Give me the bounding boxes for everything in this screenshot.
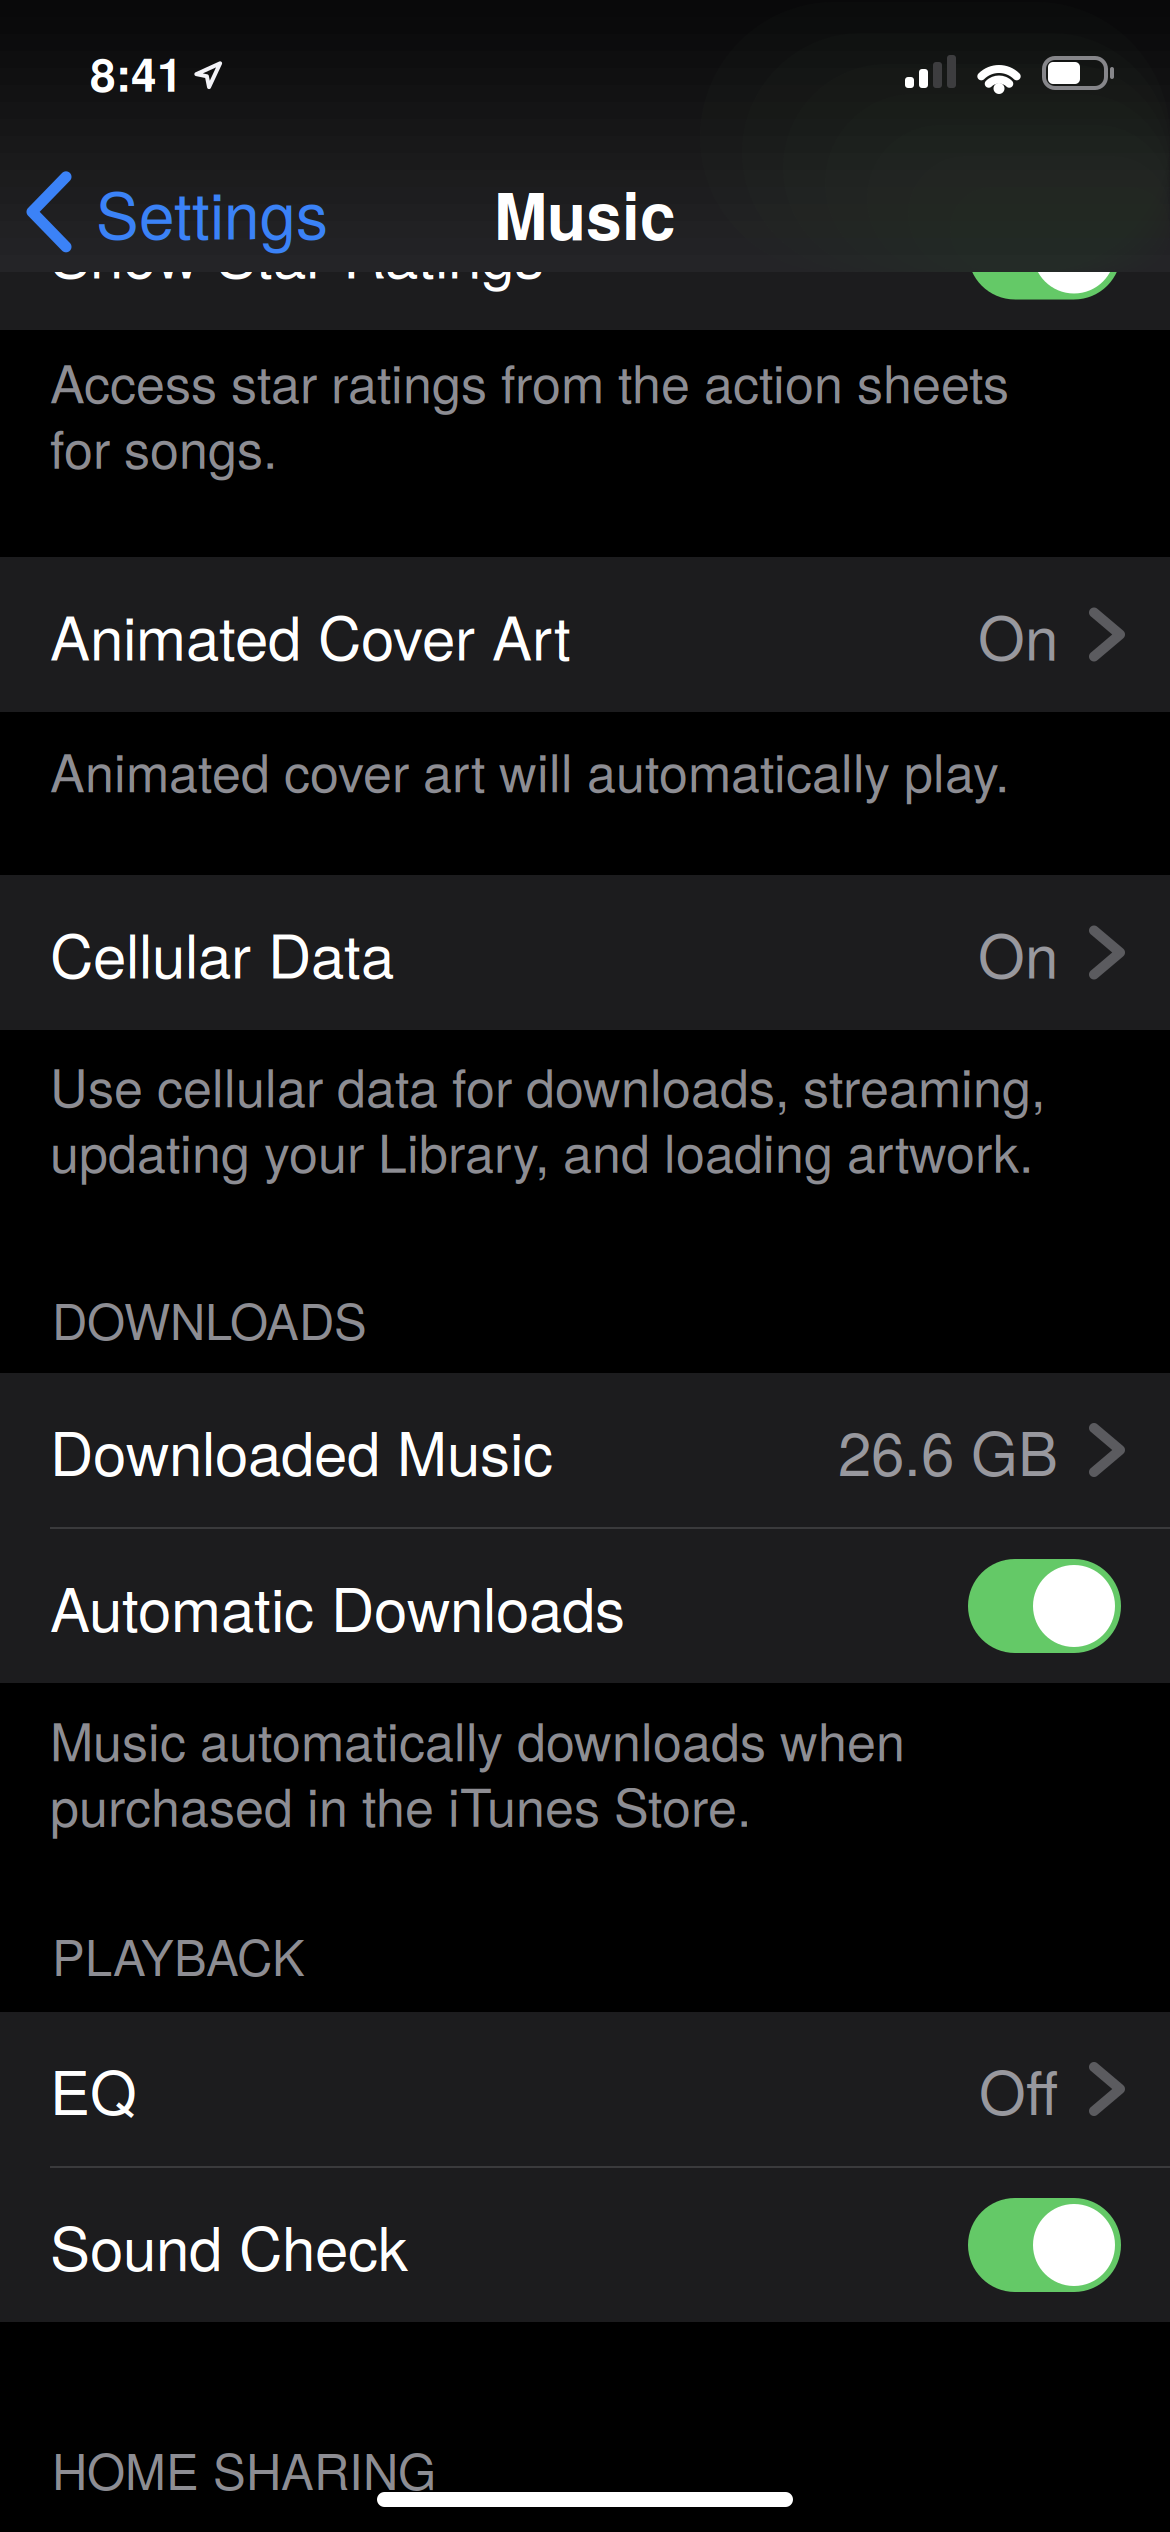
staticText: Cellular Data xyxy=(50,909,394,995)
staticText: HOME SHARING xyxy=(52,2438,436,2500)
staticText: Animated Cover Art xyxy=(50,591,571,677)
staticText: Animated cover art will automatically pl… xyxy=(50,737,1009,802)
button[interactable]: EQ xyxy=(0,2012,1170,2166)
staticText: Music automatically downloads when purch… xyxy=(50,1706,905,1837)
staticText: Music xyxy=(494,168,676,260)
staticText: 26.6 GB xyxy=(838,1407,1058,1493)
button[interactable]: Automatic Downloads xyxy=(968,1559,1121,1653)
staticText: Settings xyxy=(96,166,328,258)
staticText: DOWNLOADS xyxy=(52,1288,367,1350)
staticText: Downloaded Music xyxy=(50,1407,553,1493)
button[interactable]: Downloaded Music xyxy=(0,1373,1170,1527)
staticText: Access star ratings from the action shee… xyxy=(50,348,1009,479)
button[interactable]: Back to Settings xyxy=(0,0,328,258)
button[interactable]: Show Star Ratings xyxy=(968,205,1121,299)
staticText: Sound Check xyxy=(50,2202,408,2288)
button[interactable]: Animated Cover Art xyxy=(0,557,1170,712)
staticText: On xyxy=(978,591,1058,677)
staticText: 8:41 xyxy=(90,40,183,106)
button[interactable]: Cellular Data xyxy=(0,875,1170,1030)
staticText: On xyxy=(978,909,1058,995)
staticText: Off xyxy=(979,2046,1058,2132)
staticText: PLAYBACK xyxy=(52,1924,305,1986)
staticText: Automatic Downloads xyxy=(50,1563,625,1649)
button[interactable]: Sound Check xyxy=(968,2198,1121,2292)
staticText: Show Star Ratings xyxy=(50,209,544,295)
staticText: Use cellular data for downloads, streami… xyxy=(50,1052,1045,1183)
staticText: EQ xyxy=(50,2046,137,2132)
